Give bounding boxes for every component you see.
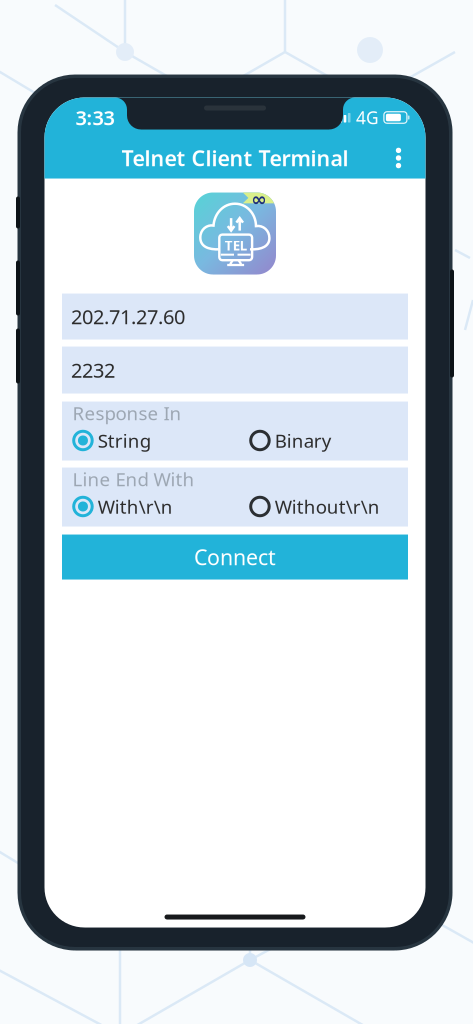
staticText: ∞ <box>251 189 267 210</box>
staticText: 202.71.27.60 <box>71 303 185 330</box>
staticText: 4G <box>356 106 379 129</box>
button[interactable]: 202.71.27.60 <box>62 293 408 339</box>
button[interactable]: Connect <box>62 534 408 579</box>
staticText: Without\r\n <box>275 494 380 519</box>
button[interactable]: 2232 <box>62 346 408 393</box>
staticText: Telnet Client Terminal <box>121 144 348 172</box>
staticText: TEL <box>225 236 247 254</box>
button[interactable]: String <box>72 427 151 453</box>
staticText: Response In <box>72 400 181 425</box>
staticText: Line End With <box>72 466 194 491</box>
staticText: Connect <box>194 543 276 571</box>
staticText: 2232 <box>71 357 115 383</box>
button[interactable]: With\r\n <box>72 493 173 519</box>
button[interactable]: Without\r\n <box>249 493 380 519</box>
staticText: 3:33 <box>75 104 114 131</box>
staticText: Binary <box>275 428 332 453</box>
staticText: String <box>98 428 151 453</box>
button[interactable]: Binary <box>249 427 332 453</box>
button[interactable]: More options <box>377 137 419 178</box>
staticText: With\r\n <box>98 494 173 519</box>
